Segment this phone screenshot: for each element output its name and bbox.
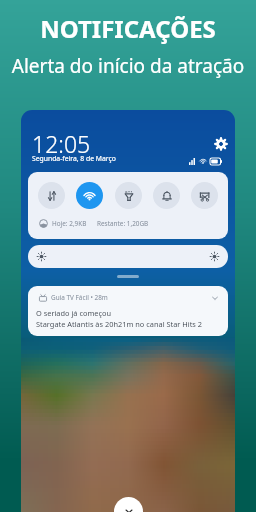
button[interactable]: Expand [209, 292, 221, 304]
button[interactable]: Mobile data [38, 182, 65, 209]
staticText: Guia TV Fácil • 28m [51, 293, 108, 302]
button[interactable]: Collapse [114, 497, 143, 512]
staticText: O seriado já começou [36, 308, 112, 318]
button[interactable]: Do not disturb [153, 182, 180, 209]
button[interactable]: Brightness [28, 245, 228, 268]
button[interactable]: Guia TV Fácil • 28m [28, 286, 228, 336]
staticText: NOTIFICAÇÕES [0, 12, 256, 45]
staticText: Segunda-feira, 8 de Março [32, 154, 116, 163]
staticText: Restante: 1,20GB [97, 219, 149, 228]
staticText: Alerta do início da atração [0, 53, 256, 79]
button[interactable]: Wi-Fi [76, 182, 103, 209]
button[interactable]: Settings [211, 134, 230, 153]
staticText: Hoje: 2,9KB [52, 219, 87, 228]
button[interactable]: Screen cast [191, 182, 218, 209]
staticText: 12:05 [32, 128, 91, 159]
button[interactable]: Flashlight [115, 182, 142, 209]
staticText: Stargate Atlantis às 20h21m no canal Sta… [36, 319, 203, 329]
